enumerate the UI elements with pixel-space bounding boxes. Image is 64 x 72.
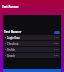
button[interactable]: Profile	[4, 47, 60, 52]
staticText: Profile	[7, 48, 15, 52]
staticText: Test Runner	[4, 30, 22, 34]
staticText: Checkout	[7, 42, 19, 46]
staticText: 2.1s	[54, 48, 59, 51]
button[interactable]: Run tests	[54, 31, 60, 34]
button[interactable]: Search	[4, 53, 60, 58]
staticText: Test Runner	[2, 5, 19, 9]
staticText: Login flow	[7, 36, 20, 40]
staticText: 0.5s	[54, 54, 59, 57]
staticText: Search	[7, 54, 16, 58]
button[interactable]: Login flow	[4, 35, 60, 40]
staticText: 1.2s	[54, 36, 59, 39]
staticText: 0.9s	[54, 42, 59, 45]
button[interactable]: Checkout	[4, 41, 60, 46]
